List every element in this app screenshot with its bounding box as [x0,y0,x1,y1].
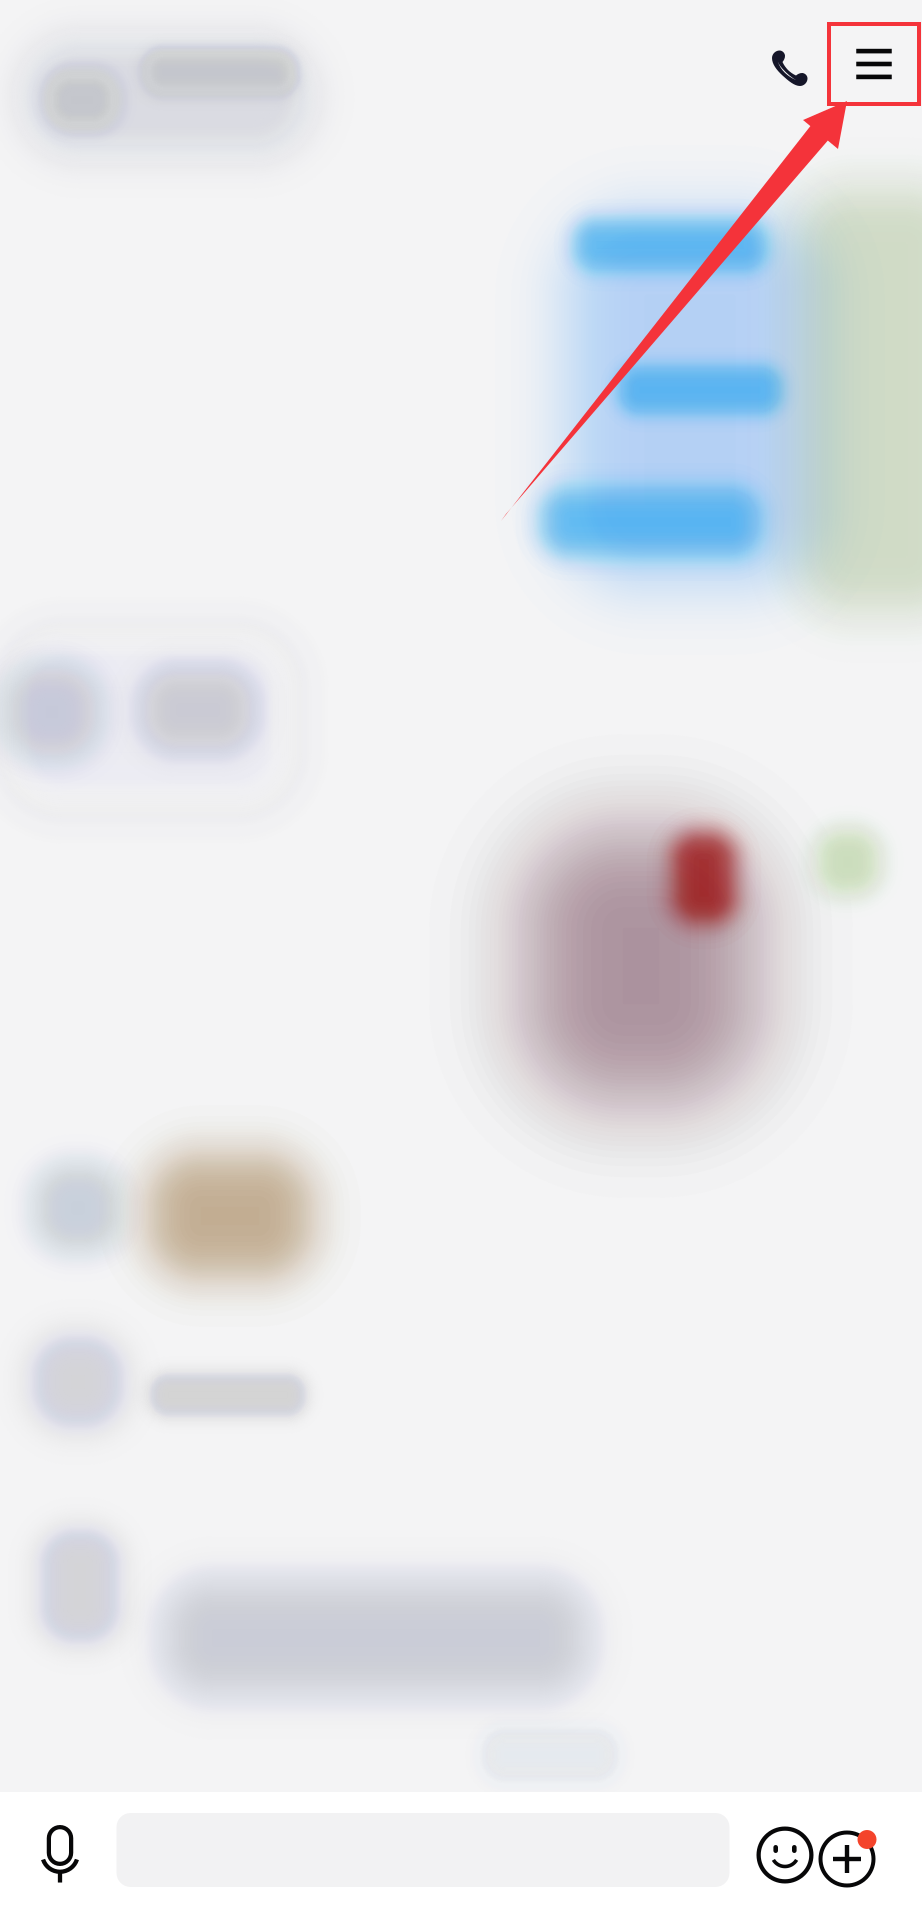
button[interactable]: More [814,1799,890,1911]
button[interactable]: Voice message [4,1791,116,1919]
button[interactable]: Call [755,33,825,103]
button[interactable]: Menu [830,25,918,103]
button[interactable]: Emoji [747,1799,823,1911]
button[interactable] [116,1794,729,1906]
